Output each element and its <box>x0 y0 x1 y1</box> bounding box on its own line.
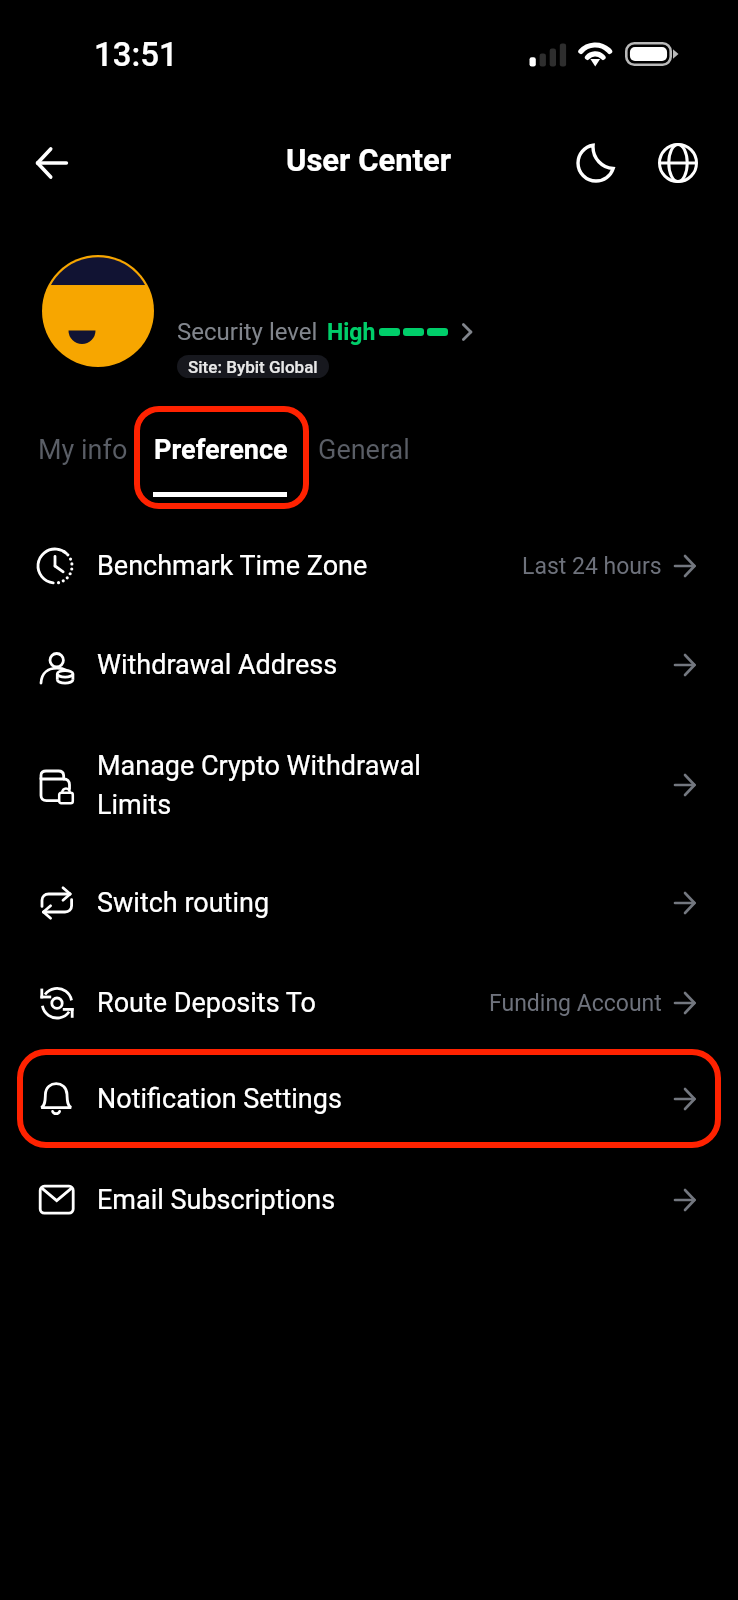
staticText: High <box>327 319 376 346</box>
button[interactable]: Switch routing <box>0 854 738 952</box>
button[interactable]: Avatar <box>42 255 154 367</box>
button[interactable]: Preference <box>142 424 300 476</box>
button[interactable]: Language <box>646 131 710 195</box>
staticText: Email Subscriptions <box>97 1184 437 1216</box>
button[interactable]: Benchmark Time Zone <box>0 517 738 615</box>
button[interactable]: General <box>306 424 422 476</box>
button[interactable]: Email Subscriptions <box>0 1151 738 1249</box>
staticText: Withdrawal Address <box>97 649 437 681</box>
staticText: Preference <box>154 434 288 466</box>
staticText: Funding Account <box>489 990 662 1017</box>
button[interactable]: Dark mode <box>564 131 628 195</box>
staticText: Benchmark Time Zone <box>97 550 437 582</box>
button[interactable]: My info <box>26 424 140 476</box>
staticText: User Center <box>286 142 452 178</box>
staticText: Last 24 hours <box>522 553 662 580</box>
staticText: Site: Bybit Global <box>188 357 318 377</box>
button[interactable]: Site: Bybit Global <box>177 355 329 378</box>
staticText: General <box>318 434 410 466</box>
button[interactable]: Security level <box>177 318 476 346</box>
button[interactable]: Route Deposits To <box>0 954 738 1052</box>
button[interactable]: Notification Settings <box>0 1050 738 1148</box>
staticText: My info <box>38 434 128 466</box>
staticText: Route Deposits To <box>97 987 437 1019</box>
staticText: Security level <box>177 318 318 346</box>
staticText: 13:51 <box>94 35 178 74</box>
button[interactable]: Back <box>20 131 84 195</box>
button[interactable]: Withdrawal Address <box>0 616 738 714</box>
staticText: Switch routing <box>97 887 437 919</box>
staticText: Notification Settings <box>97 1083 437 1115</box>
button[interactable]: Manage Crypto Withdrawal Limits <box>0 716 738 854</box>
staticText: Manage Crypto Withdrawal Limits <box>97 750 437 821</box>
